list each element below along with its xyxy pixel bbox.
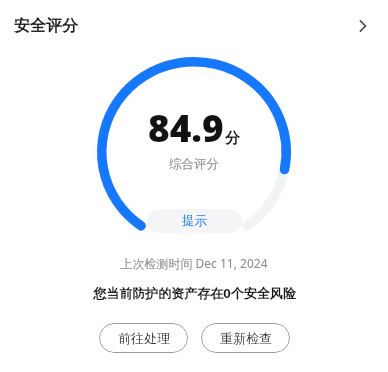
button[interactable]: 提示: [147, 209, 242, 233]
button[interactable]: 安全评分: [0, 0, 388, 52]
staticText: 重新检查: [220, 330, 272, 346]
staticText: 分: [225, 129, 240, 148]
button[interactable]: 重新检查: [201, 323, 290, 353]
button[interactable]: 前往处理: [99, 323, 188, 353]
staticText: 提示: [182, 213, 207, 229]
other: More: [350, 14, 374, 38]
staticText: 前往处理: [118, 330, 170, 346]
staticText: 安全评分: [14, 16, 78, 36]
staticText: 您当前防护的资产存在0个安全风险: [93, 284, 296, 302]
staticText: 84.9: [148, 102, 224, 152]
staticText: 综合评分: [169, 156, 219, 172]
staticText: 上次检测时间 Dec 11, 2024: [120, 255, 268, 271]
